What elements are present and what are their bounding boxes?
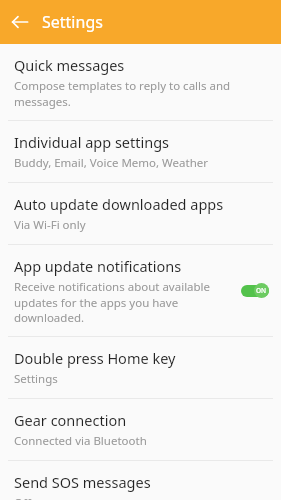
staticText: Via Wi-Fi only bbox=[14, 217, 86, 233]
staticText: Receive notifications about available up… bbox=[14, 279, 233, 325]
button[interactable]: Back bbox=[8, 10, 32, 34]
staticText: Settings bbox=[14, 371, 58, 387]
button[interactable]: Gear connection bbox=[0, 399, 281, 460]
staticText: ON bbox=[256, 286, 267, 295]
staticText: Individual app settings bbox=[14, 132, 170, 152]
staticText: Gear connection bbox=[14, 410, 127, 430]
staticText: Send SOS messages bbox=[14, 472, 151, 492]
button[interactable]: App update notifications toggle, on bbox=[241, 283, 269, 298]
button[interactable]: App update notifications bbox=[0, 245, 281, 336]
staticText: Connected via Bluetooth bbox=[14, 433, 147, 449]
staticText: Settings bbox=[42, 11, 103, 33]
staticText: Buddy, Email, Voice Memo, Weather bbox=[14, 155, 208, 171]
button[interactable]: Send SOS messages bbox=[0, 461, 281, 500]
button[interactable]: Auto update downloaded apps bbox=[0, 183, 281, 244]
staticText: Auto update downloaded apps bbox=[14, 194, 224, 214]
staticText: Compose templates to reply to calls and … bbox=[14, 78, 269, 109]
staticText: App update notifications bbox=[14, 256, 182, 276]
button[interactable]: Double press Home key bbox=[0, 337, 281, 398]
staticText: Quick messages bbox=[14, 55, 125, 75]
staticText: Double press Home key bbox=[14, 348, 176, 368]
button[interactable]: Quick messages bbox=[0, 44, 281, 120]
button[interactable]: Individual app settings bbox=[0, 121, 281, 182]
staticText: Off bbox=[14, 495, 31, 500]
